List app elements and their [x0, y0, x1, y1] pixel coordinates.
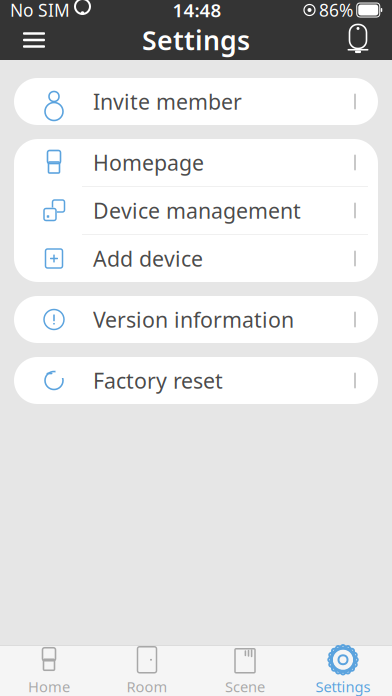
button[interactable]: Settings: [294, 645, 392, 696]
button[interactable]: Version information: [14, 296, 378, 343]
staticText: Home: [28, 677, 70, 696]
staticText: Room: [126, 677, 167, 696]
button[interactable]: Factory reset: [14, 357, 378, 404]
staticText: 86%: [319, 0, 353, 21]
staticText: Scene: [225, 677, 265, 696]
staticText: Factory reset: [93, 366, 223, 395]
button[interactable]: Notifications: [332, 21, 384, 59]
button[interactable]: Room: [98, 645, 196, 696]
button[interactable]: Menu: [8, 21, 60, 59]
staticText: Invite member: [93, 87, 242, 116]
button[interactable]: Invite member: [14, 78, 378, 125]
staticText: Version information: [93, 305, 294, 334]
staticText: Settings: [315, 677, 370, 696]
button[interactable]: Home: [0, 645, 98, 696]
staticText: Settings: [142, 22, 250, 58]
staticText: No SIM: [10, 0, 70, 21]
button[interactable]: Add device: [14, 235, 378, 282]
staticText: 14:48: [172, 0, 221, 22]
staticText: Device management: [93, 196, 301, 225]
button[interactable]: Homepage: [14, 139, 378, 186]
button[interactable]: Scene: [196, 645, 294, 696]
button[interactable]: Device management: [14, 187, 378, 234]
staticText: Add device: [93, 244, 203, 273]
staticText: Homepage: [93, 148, 204, 177]
